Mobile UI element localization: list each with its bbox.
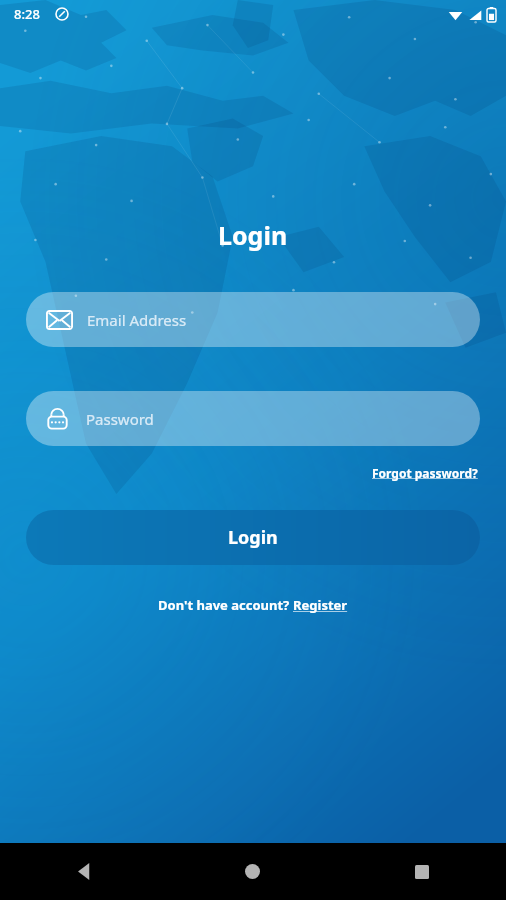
button[interactable]: Back: [0, 843, 168, 900]
staticText: Register: [293, 596, 348, 614]
staticText: Email Address: [87, 310, 187, 330]
staticText: Forgot password?: [372, 465, 478, 481]
staticText: Login: [218, 218, 288, 252]
staticText: Password: [86, 409, 154, 429]
staticText: Login: [228, 525, 278, 550]
button[interactable]: Don't have account?: [154, 593, 352, 617]
button[interactable]: Recent apps: [337, 843, 506, 900]
button[interactable]: Email Address: [26, 292, 480, 347]
button[interactable]: Forgot password?: [370, 462, 480, 484]
button[interactable]: Login: [26, 510, 480, 565]
button[interactable]: Home: [168, 843, 337, 900]
staticText: Don't have account?: [158, 596, 293, 614]
button[interactable]: Password: [26, 391, 480, 446]
staticText: 8:28: [14, 5, 40, 23]
